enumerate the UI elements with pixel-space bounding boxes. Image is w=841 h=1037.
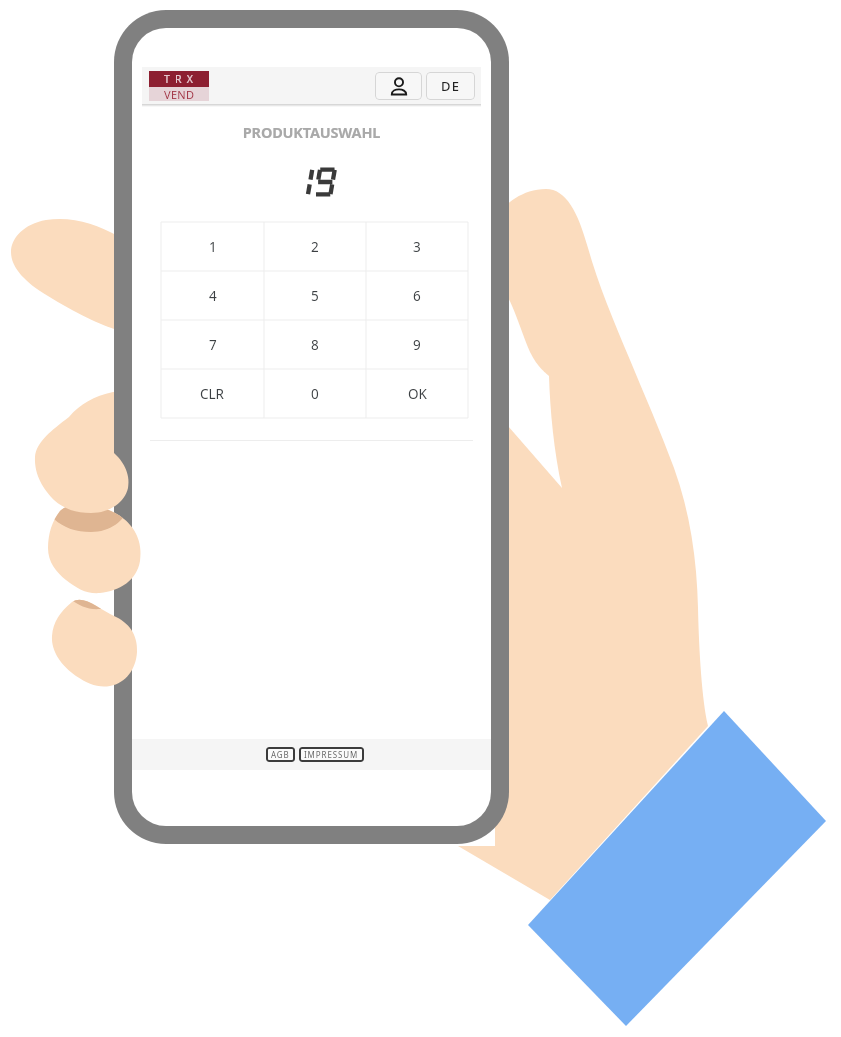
button[interactable]: 3	[366, 222, 468, 271]
button[interactable]: 5	[264, 271, 366, 320]
staticText: VEND	[164, 87, 195, 101]
staticText: 5	[311, 287, 319, 305]
button[interactable]: 4	[161, 271, 264, 320]
button[interactable]: CLR	[161, 369, 264, 418]
staticText: OK	[408, 385, 427, 403]
staticText: DE	[441, 77, 461, 95]
staticText: 6	[413, 287, 421, 305]
button[interactable]: 6	[366, 271, 468, 320]
staticText: 0	[311, 385, 319, 403]
button[interactable]: DE	[426, 72, 475, 100]
staticText: 8	[311, 336, 319, 354]
button[interactable]: AGB	[271, 747, 290, 762]
staticText: 1	[209, 238, 217, 256]
button[interactable]: T R X	[149, 71, 209, 101]
button[interactable]: IMPRESSUM	[304, 747, 359, 762]
button[interactable]: 8	[264, 320, 366, 369]
staticText: 3	[413, 238, 421, 256]
button[interactable]: 2	[264, 222, 366, 271]
button[interactable]: 1	[161, 222, 264, 271]
staticText: 4	[209, 287, 217, 305]
staticText: 2	[311, 238, 319, 256]
button[interactable]: OK	[366, 369, 468, 418]
button[interactable]: 9	[366, 320, 468, 369]
button[interactable]: 0	[264, 369, 366, 418]
staticText: IMPRESSUM	[304, 749, 359, 760]
staticText: 9	[413, 336, 421, 354]
button[interactable]: 7	[161, 320, 264, 369]
staticText: T R X	[164, 72, 194, 86]
staticText: PRODUKTAUSWAHL	[132, 122, 491, 142]
staticText: CLR	[200, 385, 225, 403]
staticText: AGB	[271, 749, 290, 760]
button[interactable]: Account	[375, 72, 422, 100]
staticText: 7	[209, 336, 217, 354]
